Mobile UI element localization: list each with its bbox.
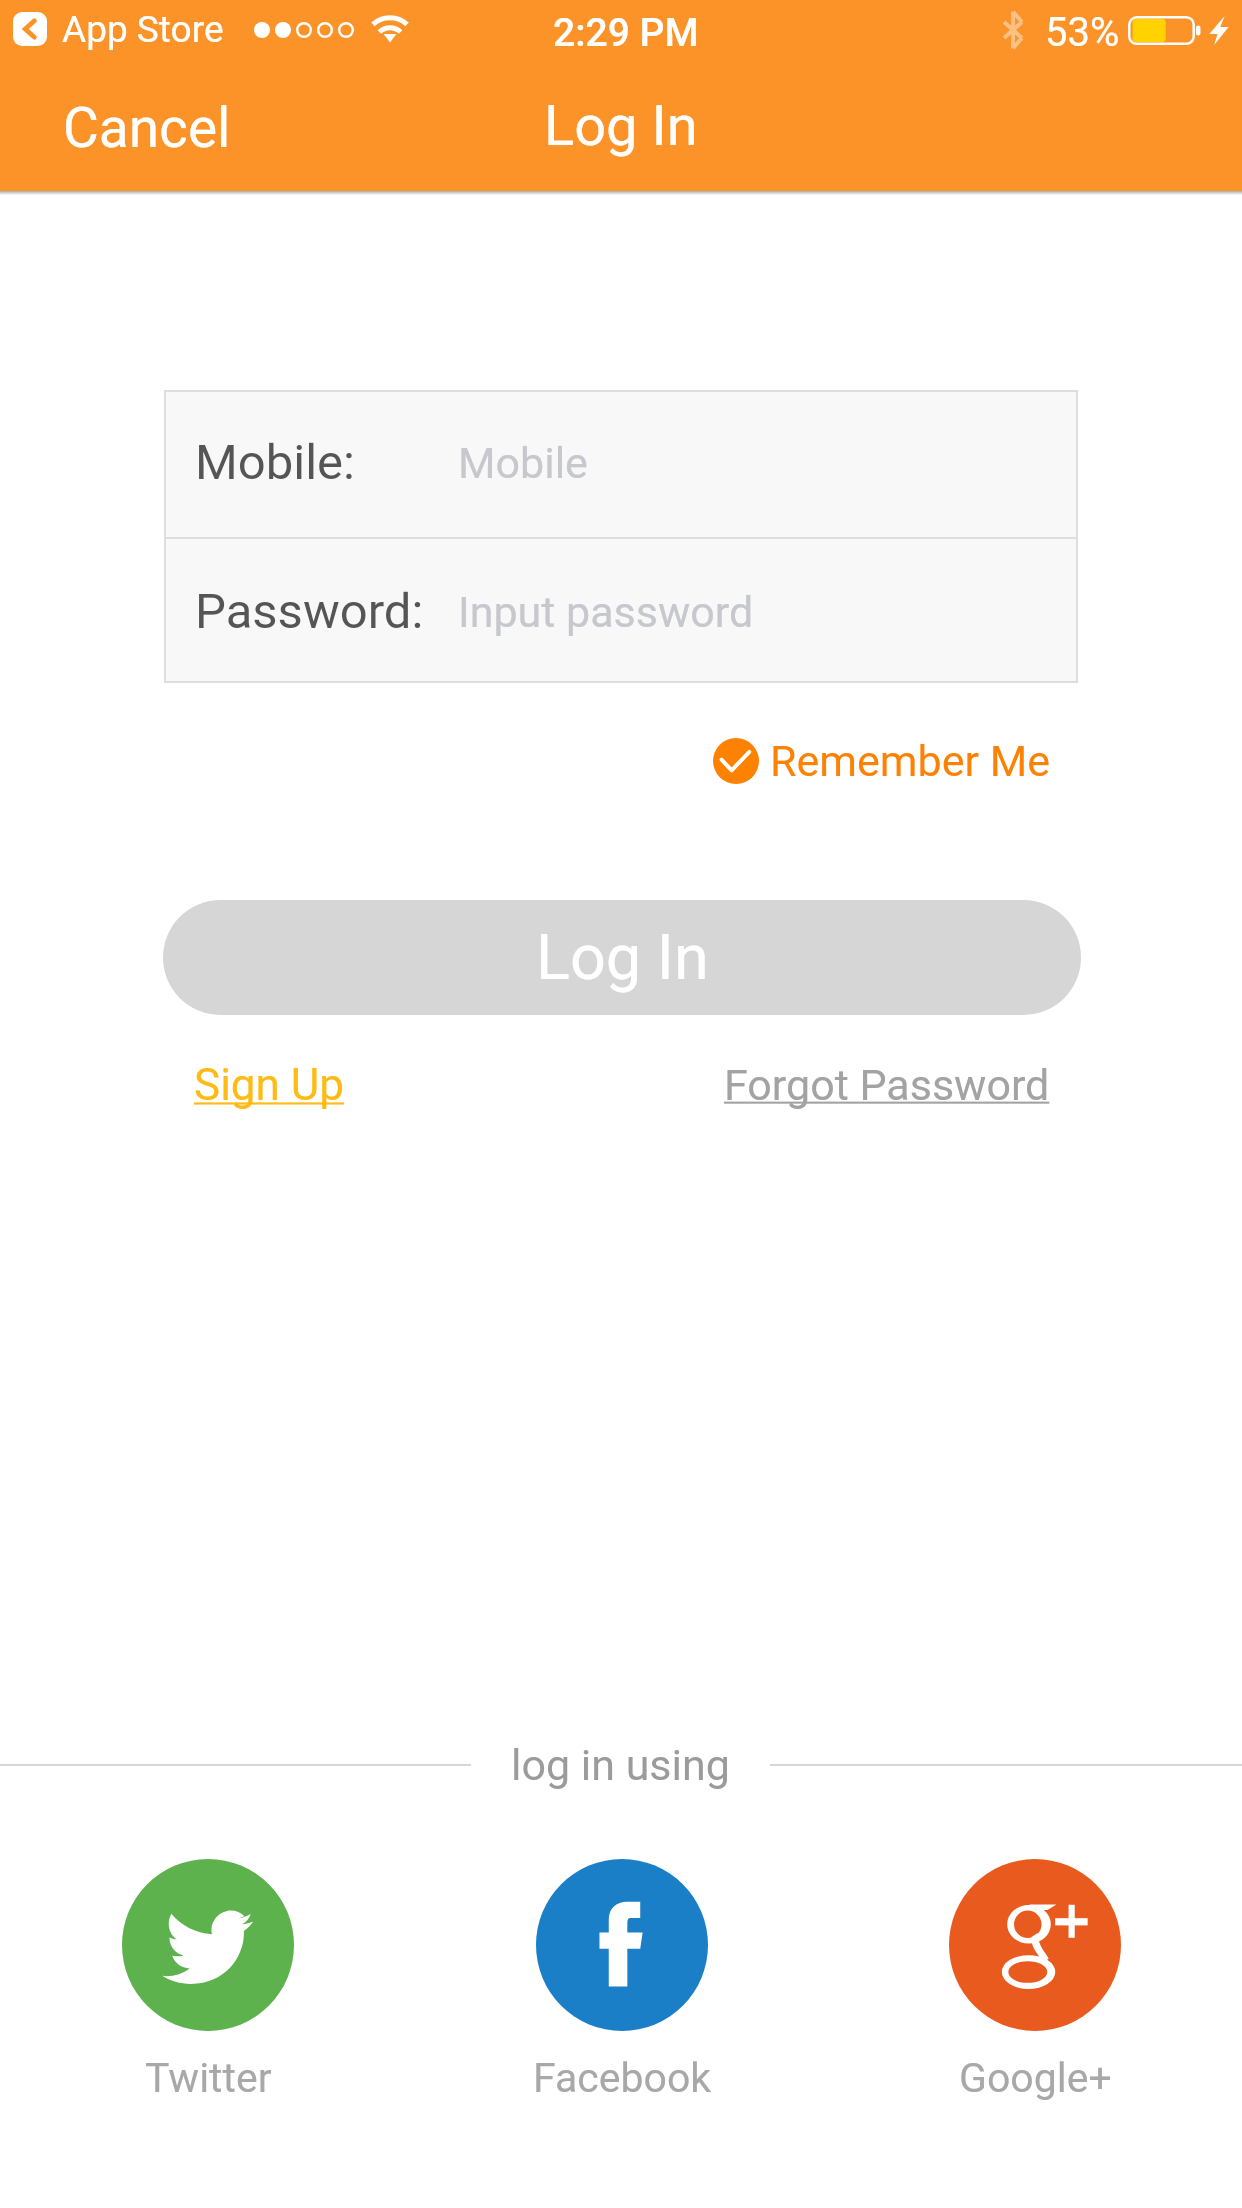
staticText: Google+ <box>959 2054 1112 2102</box>
staticText: Log In <box>536 921 709 995</box>
staticText: Log In <box>544 93 698 159</box>
staticText: Mobile <box>458 438 588 488</box>
staticText: Cancel <box>63 96 231 160</box>
button[interactable]: Back to App Store <box>13 12 47 46</box>
button[interactable]: Remember Me <box>705 729 1059 793</box>
button[interactable]: Cancel <box>49 90 245 166</box>
button[interactable]: Facebook <box>512 1859 732 2091</box>
button[interactable]: Log In <box>163 900 1081 1015</box>
staticText: App Store <box>62 8 224 51</box>
button[interactable]: Mobile: <box>164 390 1078 537</box>
staticText: 53% <box>1045 9 1120 56</box>
staticText: Remember Me <box>770 736 1051 786</box>
staticText: Twitter <box>145 2054 272 2102</box>
button[interactable]: Sign Up <box>186 1051 352 1119</box>
staticText: Facebook <box>533 2054 712 2102</box>
staticText: log in using <box>511 1740 730 1790</box>
staticText: Mobile: <box>195 434 355 491</box>
button[interactable]: Forgot Password <box>716 1052 1058 1118</box>
staticText: Sign Up <box>194 1059 344 1111</box>
button[interactable]: Twitter <box>98 1859 318 2091</box>
staticText: Password: <box>195 583 424 640</box>
staticText: 2:29 PM <box>553 10 699 56</box>
staticText: Input password <box>458 587 754 637</box>
button[interactable]: Google+ <box>925 1859 1145 2091</box>
button[interactable]: Password: <box>164 539 1078 680</box>
staticText: Forgot Password <box>724 1060 1050 1110</box>
